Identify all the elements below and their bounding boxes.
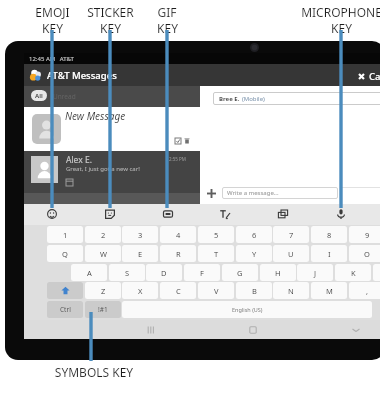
staticText: Cancel xyxy=(369,70,380,83)
staticText: 2:55 PM xyxy=(169,156,186,162)
button[interactable]: Cancel xyxy=(354,68,380,85)
staticText: 5 xyxy=(214,230,219,240)
button[interactable]: Microphone xyxy=(332,205,350,223)
button[interactable]: Handwriting xyxy=(216,205,234,223)
staticText: Write a message... xyxy=(227,189,279,197)
button[interactable]: S xyxy=(109,264,145,281)
button[interactable]: C xyxy=(160,282,196,299)
staticText: MICROPHONE xyxy=(301,4,380,20)
button[interactable]: V xyxy=(198,282,234,299)
staticText: 2 xyxy=(101,230,106,240)
staticText: A xyxy=(87,268,92,278)
button[interactable]: 8 xyxy=(311,226,347,243)
staticText: W xyxy=(100,249,107,259)
staticText: O xyxy=(364,249,370,259)
button[interactable]: Ctrl xyxy=(47,301,83,318)
button[interactable]: GIF xyxy=(159,205,177,223)
button[interactable]: Alex E. xyxy=(24,151,200,193)
staticText: V xyxy=(214,286,219,296)
staticText: N xyxy=(288,286,294,296)
staticText: , xyxy=(366,286,369,296)
button[interactable]: Sticker xyxy=(101,205,119,223)
button[interactable]: Recents xyxy=(143,322,158,337)
staticText: New Message xyxy=(65,109,126,123)
staticText: All xyxy=(35,92,43,100)
staticText: D xyxy=(161,268,167,278)
button[interactable]: Y xyxy=(236,245,272,262)
staticText: I xyxy=(328,249,331,259)
button[interactable]: Q xyxy=(47,245,83,262)
button[interactable]: F xyxy=(184,264,220,281)
staticText: 1 xyxy=(63,230,68,240)
staticText: R xyxy=(176,249,181,259)
staticText: B xyxy=(252,286,257,296)
staticText: Great, I just got a new car! xyxy=(66,165,140,173)
button[interactable]: 5 xyxy=(198,226,234,243)
staticText: AT&T Messages xyxy=(47,69,117,82)
button[interactable]: !#1 xyxy=(85,301,121,318)
staticText: Ctrl xyxy=(60,305,71,314)
button[interactable]: 9 xyxy=(349,226,380,243)
staticText: Unread xyxy=(53,92,76,101)
button[interactable]: O xyxy=(349,245,380,262)
button[interactable]: H xyxy=(260,264,296,281)
button[interactable]: U xyxy=(273,245,309,262)
staticText: 8 xyxy=(327,230,332,240)
staticText: SYMBOLS KEY xyxy=(24,364,164,380)
button[interactable]: I xyxy=(311,245,347,262)
button[interactable]: 4 xyxy=(160,226,196,243)
staticText: 7 xyxy=(289,230,294,240)
staticText: 6 xyxy=(252,230,257,240)
staticText: EMOJI xyxy=(35,4,70,20)
button[interactable]: Shift xyxy=(47,282,83,299)
button[interactable]: 7 xyxy=(273,226,309,243)
staticText: E xyxy=(138,249,143,259)
staticText: T xyxy=(214,249,219,259)
button[interactable]: New Message xyxy=(24,107,200,151)
button[interactable]: T xyxy=(198,245,234,262)
button[interactable]: B xyxy=(236,282,272,299)
button[interactable]: 1 xyxy=(47,226,83,243)
button[interactable]: 6 xyxy=(236,226,272,243)
button[interactable]: Clipboard xyxy=(274,205,292,223)
staticText: U xyxy=(288,249,294,259)
button[interactable]: Back xyxy=(348,322,363,337)
button[interactable]: A xyxy=(71,264,107,281)
staticText: C xyxy=(176,286,181,296)
staticText: (Mobile) xyxy=(242,95,265,103)
staticText: S xyxy=(125,268,130,278)
button[interactable]: L xyxy=(373,264,380,281)
staticText: 12:45 AM AT&T xyxy=(29,55,74,63)
button[interactable]: X xyxy=(122,282,158,299)
staticText: KEY xyxy=(157,20,178,36)
button[interactable]: Write a message... xyxy=(222,187,338,199)
button[interactable]: M xyxy=(311,282,347,299)
button[interactable]: All xyxy=(31,90,47,101)
staticText: GIF xyxy=(157,4,177,20)
button[interactable]: J xyxy=(297,264,333,281)
staticText: X xyxy=(138,286,143,296)
button[interactable]: K xyxy=(335,264,371,281)
button[interactable]: D xyxy=(146,264,182,281)
button[interactable]: English (US) xyxy=(122,301,372,318)
button[interactable]: Unread xyxy=(51,90,78,103)
staticText: 9 xyxy=(365,230,370,240)
button[interactable]: 2 xyxy=(85,226,121,243)
button[interactable]: G xyxy=(222,264,258,281)
button[interactable]: W xyxy=(85,245,121,262)
staticText: F xyxy=(200,268,204,278)
button[interactable]: Add attachment xyxy=(203,185,219,201)
button[interactable]: , xyxy=(349,282,380,299)
staticText: 4 xyxy=(176,230,181,240)
staticText: !#1 xyxy=(98,305,108,314)
staticText: K xyxy=(351,268,356,278)
button[interactable]: R xyxy=(160,245,196,262)
button[interactable]: Bree E. xyxy=(213,92,380,105)
button[interactable]: Home xyxy=(245,322,260,337)
button[interactable]: E xyxy=(122,245,158,262)
button[interactable]: Z xyxy=(85,282,121,299)
button[interactable]: Emoji xyxy=(43,205,61,223)
staticText: KEY xyxy=(42,20,63,36)
button[interactable]: N xyxy=(273,282,309,299)
button[interactable]: 3 xyxy=(122,226,158,243)
